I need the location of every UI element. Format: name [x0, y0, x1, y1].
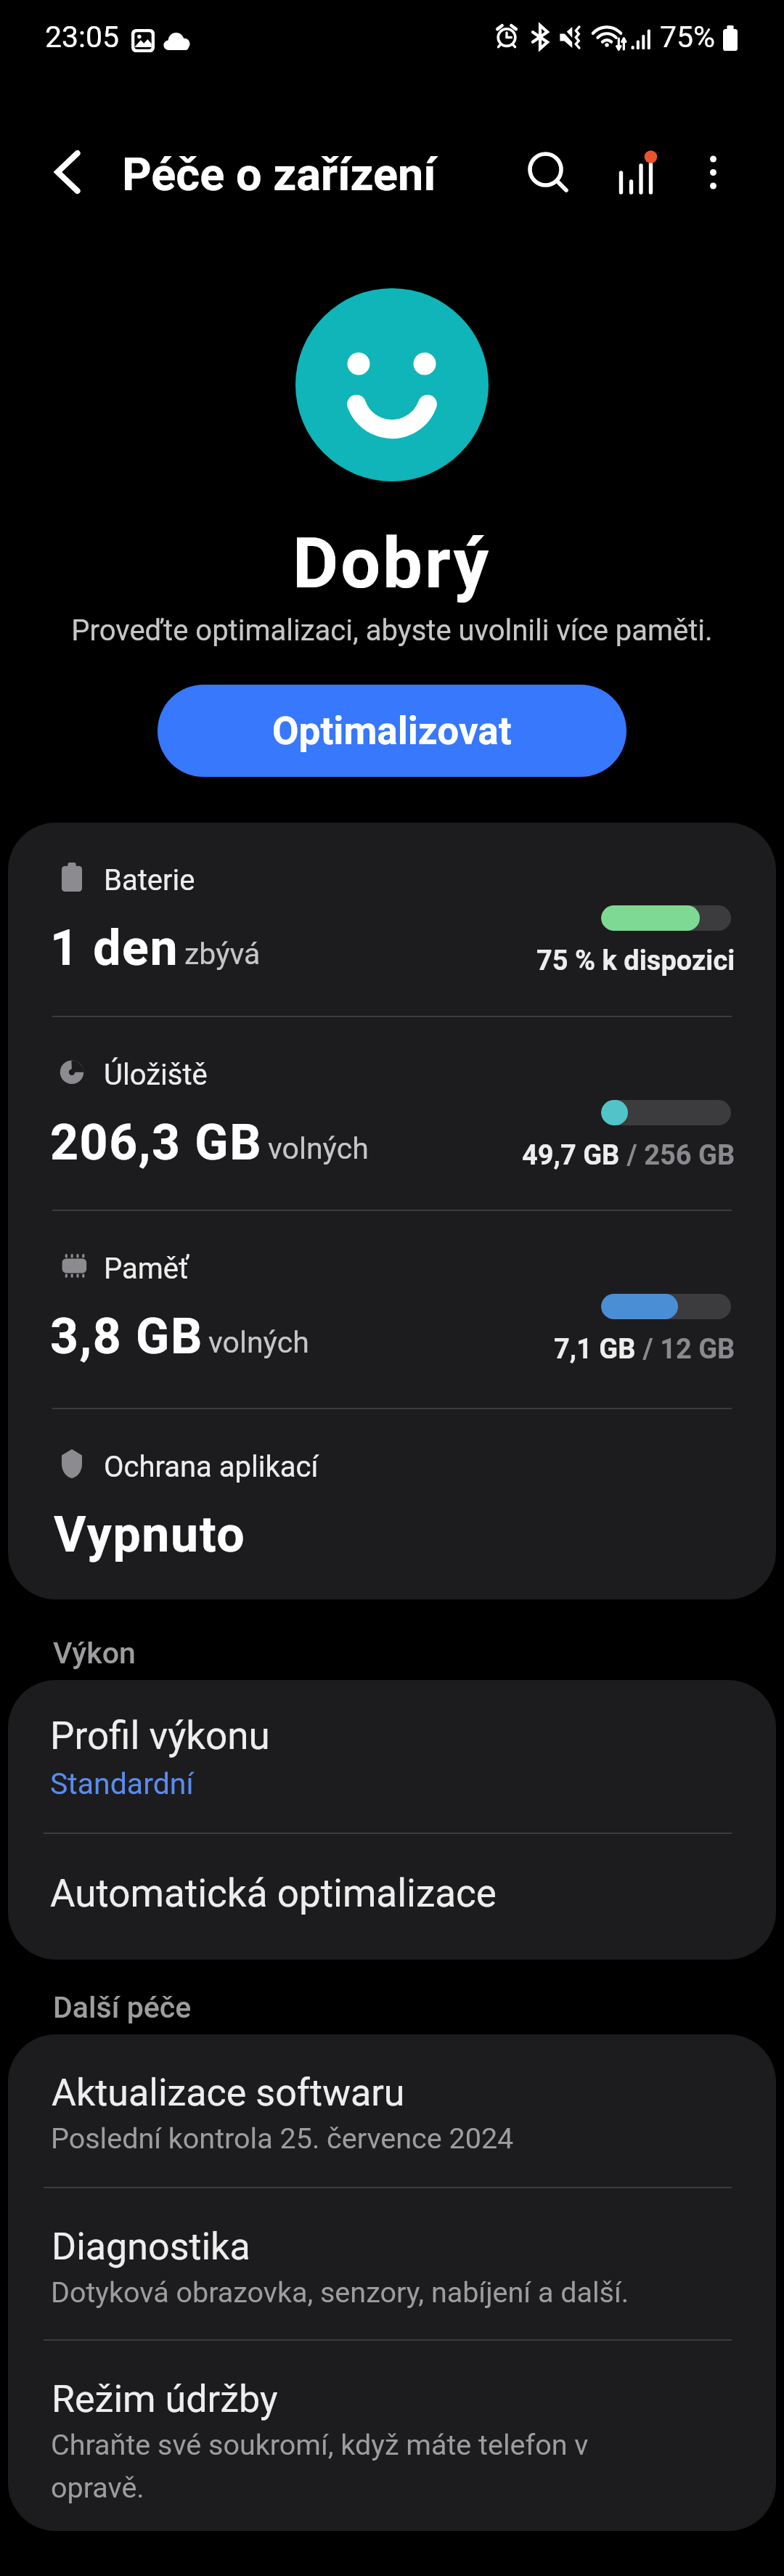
- staticText: Úložiště: [104, 1058, 208, 1092]
- button[interactable]: Profil výkonu: [8, 1680, 776, 1833]
- button[interactable]: Back: [28, 133, 107, 211]
- staticText: Dobrý: [293, 522, 491, 605]
- staticText: Automatická optimalizace: [50, 1871, 497, 1916]
- staticText: Ochrana aplikací: [104, 1450, 319, 1484]
- staticText: Další péče: [53, 1990, 192, 2025]
- button[interactable]: Aktualizace softwaru: [8, 2034, 776, 2187]
- button[interactable]: Režim údržby: [8, 2341, 776, 2531]
- staticText: 206,3 GB: [50, 1114, 263, 1172]
- button[interactable]: Ochrana aplikací: [8, 1409, 776, 1599]
- staticText: Vypnuto: [54, 1506, 246, 1564]
- staticText: volných: [268, 1131, 369, 1166]
- staticText: 75%: [660, 20, 716, 54]
- staticText: Výkon: [53, 1636, 136, 1671]
- staticText: Paměť: [104, 1252, 189, 1286]
- staticText: zbývá: [184, 937, 261, 971]
- button[interactable]: Baterie: [8, 823, 776, 1016]
- staticText: Standardní: [50, 1766, 194, 1801]
- staticText: 75 % k dispozici: [536, 945, 735, 977]
- staticText: Aktualizace softwaru: [52, 2071, 405, 2115]
- staticText: Péče o zařízení: [122, 148, 436, 202]
- staticText: / 12 GB: [636, 1333, 735, 1366]
- staticText: volných: [208, 1325, 309, 1360]
- button[interactable]: More options: [674, 130, 753, 208]
- staticText: 7,1 GB: [554, 1333, 636, 1366]
- button[interactable]: Úložiště: [8, 1017, 776, 1210]
- staticText: Diagnostika: [52, 2225, 250, 2269]
- staticText: Proveďte optimalizaci, abyste uvolnili v…: [71, 614, 713, 648]
- staticText: 1 den: [50, 919, 179, 977]
- staticText: Režim údržby: [52, 2377, 278, 2421]
- staticText: Profil výkonu: [50, 1713, 270, 1758]
- staticText: Baterie: [104, 863, 195, 897]
- button[interactable]: Automatická optimalizace: [8, 1834, 776, 1960]
- staticText: 49,7 GB: [522, 1139, 620, 1172]
- button[interactable]: Search: [506, 130, 584, 208]
- button[interactable]: Usage statistics: [581, 130, 660, 208]
- staticText: Chraňte své soukromí, když máte telefon …: [51, 2428, 630, 2504]
- button[interactable]: Diagnostika: [8, 2188, 776, 2339]
- staticText: / 256 GB: [620, 1139, 735, 1172]
- staticText: 23:05: [45, 20, 120, 54]
- staticText: 3,8 GB: [50, 1308, 203, 1366]
- button[interactable]: Paměť: [8, 1211, 776, 1408]
- staticText: Optimalizovat: [272, 709, 512, 754]
- button[interactable]: Optimalizovat: [158, 685, 626, 777]
- staticText: Dotyková obrazovka, senzory, nabíjení a …: [51, 2275, 629, 2309]
- staticText: Poslední kontrola 25. července 2024: [51, 2121, 514, 2155]
